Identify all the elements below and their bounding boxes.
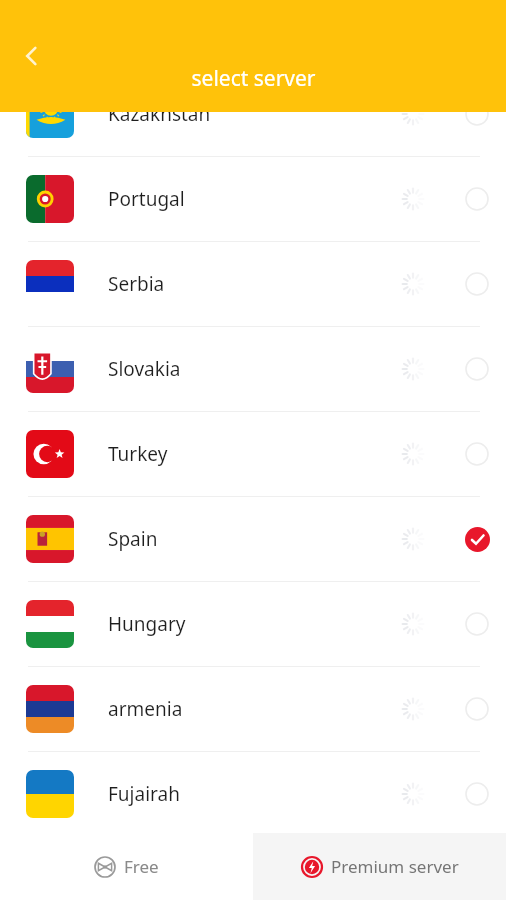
button[interactable]: Spain: [0, 497, 506, 581]
staticText: Slovakia: [108, 356, 400, 382]
staticText: Fujairah: [108, 781, 400, 807]
staticText: armenia: [108, 696, 400, 722]
button[interactable]: Turkey: [0, 412, 506, 496]
button[interactable]: Fujairah: [0, 752, 506, 836]
staticText: select server: [191, 64, 316, 93]
staticText: Spain: [108, 526, 400, 552]
staticText: Turkey: [108, 441, 400, 467]
staticText: Portugal: [108, 186, 400, 212]
button[interactable]: Premium server: [253, 833, 506, 900]
staticText: Premium server: [331, 855, 459, 878]
button[interactable]: Back: [4, 28, 60, 84]
button[interactable]: Serbia: [0, 242, 506, 326]
button[interactable]: Portugal: [0, 157, 506, 241]
staticText: Hungary: [108, 611, 400, 637]
button[interactable]: armenia: [0, 667, 506, 751]
staticText: Free: [124, 855, 159, 878]
staticText: Serbia: [108, 271, 400, 297]
staticText: Kazakhstan: [108, 101, 400, 127]
button[interactable]: Hungary: [0, 582, 506, 666]
button[interactable]: Slovakia: [0, 327, 506, 411]
button[interactable]: Kazakhstan: [0, 72, 506, 156]
button[interactable]: Free: [0, 833, 253, 900]
